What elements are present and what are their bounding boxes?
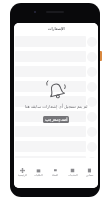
button[interactable]: أضف إشعار جديد: [43, 116, 69, 123]
staticText: السلة: [52, 174, 59, 177]
button[interactable]: المنتجات: [64, 158, 81, 188]
button[interactable]: السلة: [47, 158, 64, 188]
staticText: حسابي: [86, 174, 94, 177]
button[interactable]: الطلبات: [30, 158, 47, 188]
button[interactable]: حسابي: [81, 158, 98, 188]
staticText: الرئيسية: [18, 174, 27, 177]
staticText: الإشعارات: [48, 27, 65, 31]
staticText: لم يتم تسجيل أي إشعارات سابقة هنا: [25, 104, 88, 110]
staticText: أضف إشعار جديد: [45, 118, 68, 122]
staticText: المنتجات: [68, 174, 78, 177]
staticText: الطلبات: [34, 174, 43, 177]
other: No notifications: [46, 80, 66, 100]
button[interactable]: الرئيسية: [14, 158, 30, 188]
button[interactable]: الإشعارات: [14, 23, 98, 35]
